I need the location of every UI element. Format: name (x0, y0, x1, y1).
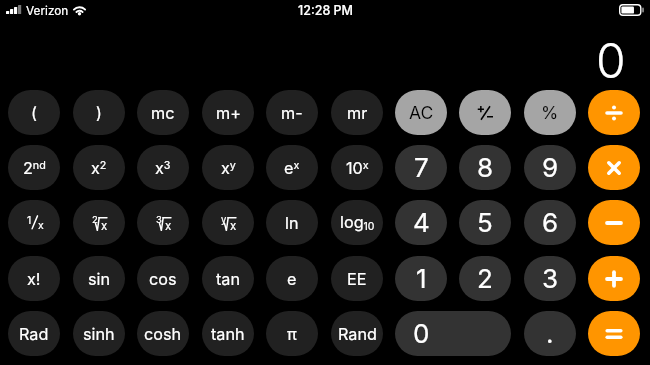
staticText: sin (88, 269, 111, 289)
button[interactable]: cos (137, 256, 189, 301)
button[interactable]: e (266, 256, 318, 301)
staticText: 0 (596, 31, 626, 89)
button[interactable]: cosh (137, 311, 189, 356)
staticText: tan (216, 269, 241, 289)
staticText: e (287, 269, 297, 289)
staticText: ) (96, 103, 102, 123)
staticText: 1 (416, 263, 427, 294)
button[interactable]: x! (8, 256, 60, 301)
staticText: Verizon (26, 4, 69, 18)
staticText: Rad (19, 324, 49, 344)
staticText: y (221, 214, 227, 225)
button[interactable]: 2 (459, 256, 511, 301)
button[interactable]: AC (395, 90, 447, 135)
staticText: 2 (477, 263, 493, 294)
button[interactable]: mr (331, 90, 383, 135)
staticText: 1 (27, 214, 32, 227)
button[interactable]: 7 (395, 145, 447, 190)
button[interactable]: Plus minus (459, 90, 511, 135)
button[interactable]: m- (266, 90, 318, 135)
button[interactable]: 9 (524, 145, 576, 190)
staticText: x (165, 219, 172, 233)
staticText: 2 (92, 214, 98, 225)
staticText: m+ (216, 103, 241, 123)
button[interactable]: ex (266, 145, 318, 190)
staticText: EE (347, 269, 367, 289)
button[interactable]: 8 (459, 145, 511, 190)
staticText: x! (27, 269, 41, 289)
button[interactable]: x3 (137, 145, 189, 190)
staticText: m- (281, 103, 303, 123)
button[interactable]: EE (331, 256, 383, 301)
staticText: xy (221, 158, 236, 178)
staticText: ex (284, 158, 300, 178)
staticText: 7 (414, 152, 429, 183)
button[interactable]: ln (266, 200, 318, 245)
button[interactable]: Subtract (588, 200, 640, 245)
staticText: ( (31, 103, 37, 123)
button[interactable]: tan (202, 256, 254, 301)
staticText: AC (409, 102, 434, 123)
button[interactable]: π (266, 311, 318, 356)
button[interactable]: Rand (331, 311, 383, 356)
staticText: 6 (542, 207, 559, 238)
button[interactable]: sinh (73, 311, 125, 356)
staticText: ln (285, 213, 299, 233)
staticText: 3 (156, 214, 162, 225)
staticText: cos (149, 269, 177, 289)
staticText: Rand (338, 324, 377, 344)
button[interactable]: One over x (8, 200, 60, 245)
staticText: 5 (477, 207, 493, 238)
staticText: 0 (413, 318, 430, 349)
button[interactable]: 0 (395, 311, 511, 356)
button[interactable]: Cube root (137, 200, 189, 245)
button[interactable]: m+ (202, 90, 254, 135)
staticText: x2 (91, 158, 107, 178)
staticText: x (230, 219, 237, 233)
button[interactable]: 10x (331, 145, 383, 190)
button[interactable]: xy (202, 145, 254, 190)
button[interactable]: Add (588, 256, 640, 301)
button[interactable]: Square root (73, 200, 125, 245)
staticText: 2nd (23, 158, 46, 178)
staticText: 4 (413, 207, 430, 238)
button[interactable]: 5 (459, 200, 511, 245)
button[interactable]: Y root (202, 200, 254, 245)
staticText: x3 (155, 158, 171, 178)
staticText: 10x (346, 158, 369, 178)
staticText: π (287, 324, 297, 344)
button[interactable]: . (524, 311, 576, 356)
staticText: tanh (211, 324, 245, 344)
staticText: cosh (144, 324, 182, 344)
button[interactable]: 2nd (8, 145, 60, 190)
button[interactable]: ( (8, 90, 60, 135)
staticText: % (541, 102, 559, 123)
staticText: x (38, 219, 44, 232)
button[interactable]: 1 (395, 256, 447, 301)
staticText: log10 (340, 212, 375, 233)
staticText: 9 (542, 152, 559, 183)
button[interactable]: tanh (202, 311, 254, 356)
staticText: sinh (83, 324, 115, 344)
button[interactable]: ) (73, 90, 125, 135)
button[interactable]: Equals (588, 311, 640, 356)
button[interactable]: Multiply (588, 145, 640, 190)
button[interactable]: mc (137, 90, 189, 135)
button[interactable]: 6 (524, 200, 576, 245)
button[interactable]: Divide (588, 90, 640, 135)
staticText: mc (151, 103, 175, 123)
staticText: mr (347, 103, 368, 123)
button[interactable]: x2 (73, 145, 125, 190)
staticText: . (546, 318, 554, 349)
button[interactable]: 4 (395, 200, 447, 245)
button[interactable]: 3 (524, 256, 576, 301)
staticText: x (101, 219, 108, 233)
staticText: 12:28 PM (298, 3, 354, 18)
button[interactable]: sin (73, 256, 125, 301)
staticText: 8 (477, 152, 494, 183)
button[interactable]: Rad (8, 311, 60, 356)
button[interactable]: log10 (331, 200, 383, 245)
staticText: 3 (542, 263, 559, 294)
button[interactable]: % (524, 90, 576, 135)
